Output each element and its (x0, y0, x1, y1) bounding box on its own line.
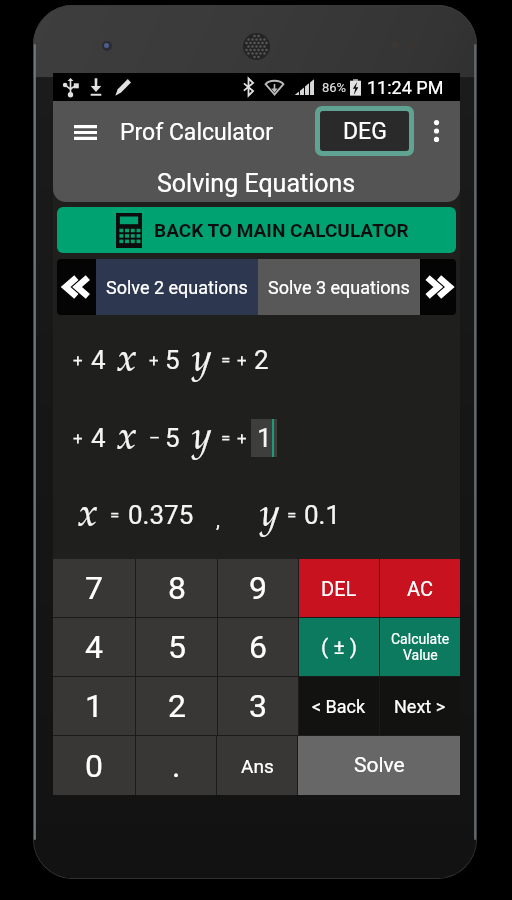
staticText: 8 (168, 569, 186, 607)
staticText: 0 (85, 747, 103, 785)
button[interactable]: More options (417, 109, 455, 153)
button[interactable]: Ans (217, 736, 297, 795)
staticText: DEG (343, 118, 387, 145)
staticText: = (287, 505, 297, 525)
staticText: = (110, 505, 120, 525)
staticText: + (73, 428, 83, 448)
staticText: Next > (394, 696, 446, 717)
staticText: y (260, 497, 280, 536)
staticText: Prof Calculator (120, 119, 274, 146)
staticText: ( ± ) (321, 635, 358, 660)
button[interactable]: 8 (136, 559, 217, 617)
staticText: 4 (91, 423, 106, 453)
button[interactable]: AC (380, 559, 460, 617)
button[interactable]: 0 (53, 736, 135, 795)
staticText: y (192, 342, 212, 381)
staticText: x (117, 420, 137, 459)
staticText: 1 (257, 423, 272, 453)
button[interactable]: . (136, 736, 216, 795)
staticText: 5 (168, 628, 186, 666)
staticText: + (237, 350, 247, 370)
button[interactable]: Solve (298, 736, 460, 795)
button[interactable]: Next (420, 259, 456, 315)
staticText: 5 (165, 423, 180, 453)
staticText: Solve (354, 753, 405, 778)
staticText: 3 (249, 687, 267, 725)
button[interactable]: ( ± ) (299, 618, 379, 676)
staticText: 0.375 (128, 500, 194, 530)
button[interactable]: Solve 3 equations (258, 259, 420, 315)
staticText: – (149, 428, 161, 448)
staticText: . (172, 747, 181, 785)
button[interactable]: Next > (380, 677, 460, 735)
staticText: 0.1 (304, 500, 341, 530)
staticText: 9 (249, 569, 267, 607)
staticText: 4 (85, 628, 103, 666)
button[interactable]: < Back (299, 677, 379, 735)
staticText: + (237, 428, 247, 448)
staticText: Ans (241, 755, 274, 777)
staticText: x (117, 342, 137, 381)
button[interactable]: 2 (136, 677, 217, 735)
staticText: DEL (321, 577, 357, 600)
button[interactable]: 5 (136, 618, 217, 676)
staticText: Solve 2 equations (106, 277, 248, 298)
staticText: 4 (91, 345, 106, 375)
button[interactable]: 4 (53, 618, 135, 676)
staticText: = (221, 428, 231, 448)
staticText: x (78, 497, 98, 536)
staticText: + (149, 350, 159, 370)
staticText: = (221, 350, 231, 370)
button[interactable]: 1 (53, 677, 135, 735)
button[interactable]: Solve 2 equations (96, 259, 258, 315)
staticText: 86% (322, 80, 347, 95)
staticText: 2 (254, 345, 269, 375)
button[interactable]: 3 (218, 677, 298, 735)
button[interactable]: 6 (218, 618, 298, 676)
button[interactable]: Open navigation menu (63, 110, 107, 154)
staticText: Calculate (391, 631, 450, 647)
staticText: AC (407, 577, 433, 600)
staticText: 7 (85, 569, 103, 607)
button[interactable]: DEG (320, 111, 409, 151)
staticText: < Back (312, 696, 366, 717)
staticText: 11:24 PM (367, 77, 444, 98)
staticText: Value (403, 647, 438, 663)
button[interactable]: 7 (53, 559, 135, 617)
button[interactable]: Previous (57, 259, 96, 315)
staticText: 6 (249, 628, 267, 666)
staticText: , (216, 508, 220, 531)
staticText: 1 (85, 687, 103, 725)
staticText: 2 (168, 687, 186, 725)
staticText: + (73, 350, 83, 370)
staticText: BACK TO MAIN CALCULATOR (154, 219, 409, 241)
staticText: 5 (165, 345, 180, 375)
button[interactable]: 9 (218, 559, 298, 617)
staticText: Solve 3 equations (268, 277, 410, 298)
button[interactable]: DEL (299, 559, 379, 617)
button[interactable]: Calculate (380, 618, 460, 676)
staticText: Solving Equations (157, 169, 356, 198)
button[interactable]: BACK TO MAIN CALCULATOR (57, 207, 456, 253)
staticText: y (192, 420, 212, 459)
